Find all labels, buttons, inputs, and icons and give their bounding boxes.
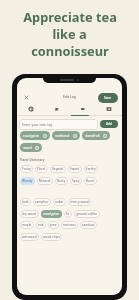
button[interactable]: Brewing bbox=[44, 104, 70, 114]
staticText: pine bbox=[50, 223, 57, 227]
staticText: Earthy bbox=[86, 167, 96, 171]
button[interactable]: wood chips bbox=[41, 233, 62, 241]
staticText: Vegetal bbox=[52, 167, 64, 171]
button[interactable]: oak bbox=[36, 221, 46, 229]
button[interactable]: Floral bbox=[35, 165, 48, 173]
staticText: sweet bbox=[23, 146, 32, 150]
button[interactable]: cedar bbox=[53, 198, 66, 206]
button[interactable]: sawdust bbox=[80, 221, 97, 229]
button[interactable]: Nutty bbox=[55, 177, 68, 185]
button[interactable]: Burnt bbox=[84, 177, 97, 185]
staticText: bark bbox=[22, 200, 29, 204]
button[interactable]: eucalyptus bbox=[20, 131, 50, 140]
button[interactable]: Earthy bbox=[84, 165, 98, 173]
button[interactable]: wet wood bbox=[20, 233, 39, 241]
staticText: sawdust bbox=[82, 223, 95, 227]
button[interactable]: sweet bbox=[20, 143, 42, 152]
button[interactable]: Woody bbox=[20, 177, 35, 185]
button[interactable]: pine bbox=[48, 221, 59, 229]
staticText: Edit Log bbox=[63, 94, 76, 98]
button[interactable]: Save bbox=[98, 93, 118, 103]
staticText: eucalyptus bbox=[43, 212, 60, 216]
staticText: Spicy bbox=[72, 179, 80, 183]
staticText: Enter your own tag bbox=[22, 122, 53, 127]
staticText: wood chips bbox=[43, 235, 60, 239]
button[interactable]: maple bbox=[20, 221, 34, 229]
button[interactable]: dry wood bbox=[20, 210, 39, 218]
staticText: wet wood bbox=[22, 235, 37, 239]
staticText: cedar bbox=[55, 200, 64, 204]
staticText: Nutty bbox=[57, 179, 66, 183]
button[interactable]: Photos bbox=[96, 104, 122, 114]
staticText: Flavor Dictionary bbox=[20, 158, 45, 162]
button[interactable]: Mineral bbox=[37, 177, 53, 185]
button[interactable]: bark bbox=[20, 198, 31, 206]
button[interactable]: Fruity bbox=[20, 165, 33, 173]
staticText: Fruity bbox=[22, 167, 31, 171]
button[interactable]: cherry wood bbox=[68, 198, 91, 206]
button[interactable]: fir bbox=[64, 210, 72, 218]
button[interactable]: stonefruit bbox=[82, 131, 110, 140]
staticText: connoisseur bbox=[31, 42, 109, 59]
button[interactable]: Sweet bbox=[68, 165, 82, 173]
staticText: Save bbox=[104, 96, 112, 100]
staticText: dry wood bbox=[22, 212, 37, 216]
button[interactable]: Enter your own tag bbox=[19, 119, 98, 130]
button[interactable]: ground coffee bbox=[74, 210, 100, 218]
staticText: Floral bbox=[37, 167, 46, 171]
staticText: Burnt bbox=[86, 179, 95, 183]
staticText: Appreciate tea bbox=[23, 8, 117, 25]
staticText: Woody bbox=[22, 179, 33, 183]
staticText: cherry wood bbox=[70, 200, 89, 204]
staticText: fir bbox=[66, 212, 70, 216]
staticText: stonefruit bbox=[85, 134, 100, 138]
button[interactable]: Tags bbox=[70, 104, 96, 114]
staticText: camphor bbox=[35, 200, 49, 204]
staticText: Mineral bbox=[39, 179, 51, 183]
button[interactable]: Details bbox=[17, 104, 44, 114]
staticText: maple bbox=[22, 223, 32, 227]
button[interactable]: resinous bbox=[61, 221, 78, 229]
staticText: eucalyptus bbox=[23, 134, 40, 138]
button[interactable]: Spicy bbox=[70, 177, 82, 185]
staticText: Sweet bbox=[70, 167, 80, 171]
staticText: methanol bbox=[55, 134, 70, 138]
button[interactable]: Vegetal bbox=[50, 165, 66, 173]
button[interactable]: Close bbox=[21, 92, 31, 102]
button[interactable]: camphor bbox=[33, 198, 51, 206]
staticText: oak bbox=[38, 223, 44, 227]
button[interactable]: eucalyptus bbox=[41, 210, 62, 218]
button[interactable]: Add bbox=[100, 120, 118, 128]
staticText: resinous bbox=[63, 223, 76, 227]
staticText: ground coffee bbox=[76, 212, 98, 216]
staticText: Add bbox=[106, 122, 112, 126]
staticText: like a bbox=[52, 25, 87, 42]
button[interactable]: methanol bbox=[52, 131, 80, 140]
